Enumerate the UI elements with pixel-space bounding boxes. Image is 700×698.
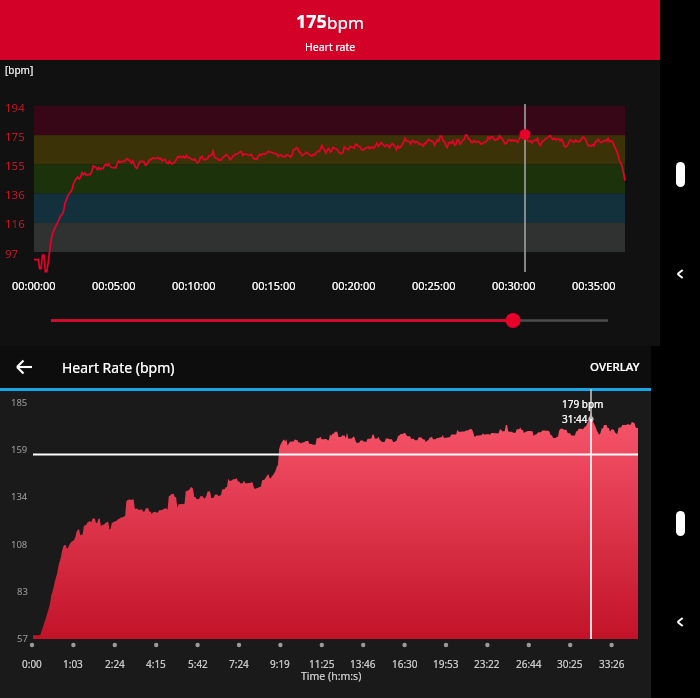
button[interactable]: Back: [0, 346, 48, 388]
staticText: 00:15:00: [252, 278, 296, 293]
staticText: 9:19: [270, 657, 290, 671]
staticText: 31:44: [562, 412, 588, 426]
staticText: 16:30: [392, 657, 418, 671]
button[interactable]: OVERLAY: [578, 349, 651, 385]
staticText: 1:03: [63, 657, 83, 671]
staticText: 136: [5, 187, 25, 203]
staticText: 155: [5, 158, 25, 174]
staticText: 134: [11, 490, 28, 503]
staticText: 30:25: [557, 657, 583, 671]
staticText: 00:30:00: [492, 278, 536, 293]
staticText: 97: [5, 246, 19, 262]
staticText: Time (h:m:s): [301, 669, 362, 683]
staticText: 23:22: [474, 657, 500, 671]
staticText: 33:26: [599, 657, 625, 671]
button[interactable]: Drag handle: [676, 162, 685, 187]
staticText: bpm: [327, 11, 364, 34]
staticText: Heart rate: [305, 40, 356, 54]
staticText: 194: [5, 100, 25, 116]
staticText: 26:44: [516, 657, 542, 671]
staticText: 00:05:00: [92, 278, 136, 293]
staticText: 5:42: [188, 657, 208, 671]
button[interactable]: 175: [0, 0, 660, 60]
staticText: 159: [11, 443, 28, 456]
staticText: 185: [11, 396, 28, 409]
staticText: 0:00: [22, 657, 42, 671]
staticText: 179 bpm: [562, 397, 604, 411]
staticText: 19:53: [433, 657, 459, 671]
staticText: 83: [17, 585, 28, 598]
staticText: 175: [296, 9, 327, 34]
button[interactable]: Time slider: [40, 306, 620, 335]
staticText: 108: [11, 538, 28, 551]
staticText: 4:15: [146, 657, 166, 671]
staticText: 57: [17, 632, 28, 645]
staticText: 00:20:00: [332, 278, 376, 293]
button[interactable]: Drag handle: [676, 511, 685, 536]
staticText: 116: [5, 216, 25, 232]
button[interactable]: Back: [669, 263, 691, 285]
staticText: 13:46: [350, 657, 376, 671]
staticText: 00:25:00: [412, 278, 456, 293]
button[interactable]: Back: [669, 611, 691, 633]
staticText: 00:35:00: [572, 278, 616, 293]
staticText: 175: [5, 129, 25, 145]
staticText: OVERLAY: [590, 359, 640, 375]
staticText: [bpm]: [5, 63, 34, 77]
staticText: 00:10:00: [172, 278, 216, 293]
staticText: 00:00:00: [12, 278, 56, 293]
staticText: 7:24: [229, 657, 249, 671]
staticText: 11:25: [309, 657, 335, 671]
staticText: Heart Rate (bpm): [62, 358, 175, 377]
staticText: 2:24: [105, 657, 125, 671]
